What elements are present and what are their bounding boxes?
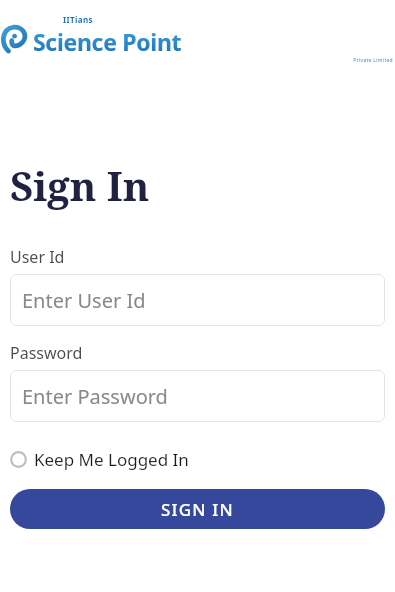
button[interactable]: Keep Me Logged In xyxy=(8,445,191,474)
staticText: User Id xyxy=(10,246,65,268)
button[interactable]: SIGN IN xyxy=(10,489,385,529)
staticText: Science Point xyxy=(33,26,182,57)
staticText: Enter User Id xyxy=(22,287,146,314)
button[interactable]: Enter Password xyxy=(10,370,385,422)
staticText: Sign In xyxy=(10,158,150,212)
staticText: Password xyxy=(10,342,83,364)
staticText: Enter Password xyxy=(22,383,168,410)
staticText: Keep Me Logged In xyxy=(34,448,189,471)
staticText: Private Limited xyxy=(33,57,393,64)
staticText: IITians xyxy=(63,14,94,25)
button[interactable]: Enter User Id xyxy=(10,274,385,326)
staticText: SIGN IN xyxy=(161,498,234,521)
